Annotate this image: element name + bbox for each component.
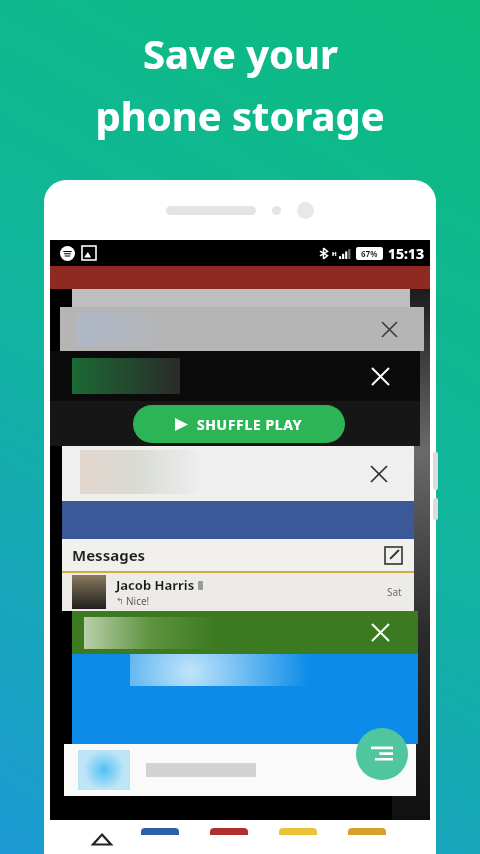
button[interactable]: Tab xyxy=(278,828,318,854)
staticText: 67% xyxy=(361,248,378,259)
staticText: Save your xyxy=(143,26,338,80)
other: Compose message xyxy=(385,547,402,564)
button[interactable]: Tab xyxy=(209,828,249,854)
button[interactable]: Close xyxy=(62,446,414,501)
staticText: 15:13 xyxy=(388,244,424,263)
staticText: Jacob Harris xyxy=(116,576,195,594)
button[interactable]: Close xyxy=(367,363,394,390)
staticText: Messages xyxy=(72,545,146,565)
button[interactable]: Close xyxy=(377,317,402,342)
button[interactable]: Messages xyxy=(62,539,414,571)
button[interactable]: Tab xyxy=(140,828,180,854)
button[interactable]: Close xyxy=(60,307,424,351)
button[interactable]: Tab xyxy=(347,828,387,854)
staticText: H xyxy=(332,250,337,258)
staticText: phone storage xyxy=(95,88,385,142)
button[interactable]: Close xyxy=(366,461,392,487)
button[interactable]: Jacob Harris xyxy=(62,573,414,611)
button[interactable]: Clean up xyxy=(356,728,408,780)
staticText: Nice! xyxy=(126,594,150,608)
button[interactable]: Home xyxy=(93,828,111,850)
button[interactable]: Close xyxy=(72,611,418,654)
button[interactable]: Close xyxy=(367,619,394,646)
staticText: SHUFFLE PLAY xyxy=(197,415,303,434)
staticText: Sat xyxy=(387,585,402,599)
button[interactable]: SHUFFLE PLAY xyxy=(133,405,345,443)
staticText: ↰ xyxy=(116,596,124,606)
